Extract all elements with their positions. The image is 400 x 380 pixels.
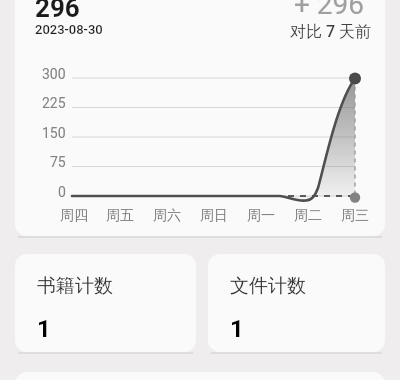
staticText: 周一	[247, 207, 275, 224]
staticText: 周六	[153, 207, 181, 224]
staticText: 296	[35, 0, 80, 23]
staticText: 75	[50, 154, 66, 170]
staticText: 周日	[200, 207, 228, 224]
staticText: 150	[42, 125, 66, 141]
button[interactable]: 296	[15, 0, 385, 236]
staticText: 周四	[60, 207, 88, 224]
staticText: 书籍计数	[37, 274, 113, 298]
staticText: 周三	[341, 207, 369, 224]
staticText: 0	[58, 184, 66, 200]
staticText: 300	[42, 66, 66, 82]
staticText: 2023-08-30	[35, 22, 103, 37]
staticText: 文件计数	[230, 274, 306, 298]
staticText: 周二	[294, 207, 322, 224]
staticText: 225	[42, 95, 66, 111]
staticText: 周五	[106, 207, 134, 224]
staticText: 1	[37, 315, 51, 343]
staticText: 1	[230, 315, 244, 343]
staticText: 对比 7 天前	[290, 22, 372, 42]
button[interactable]: 书籍计数	[15, 254, 196, 352]
button[interactable]: 文件计数	[208, 254, 385, 352]
staticText: + 296	[294, 0, 365, 21]
